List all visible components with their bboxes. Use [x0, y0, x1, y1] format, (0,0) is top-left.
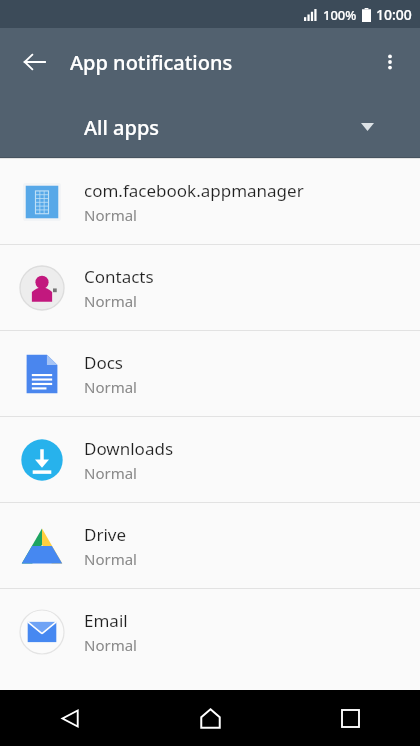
staticText: Normal — [84, 463, 137, 483]
button[interactable]: Email — [0, 588, 420, 674]
staticText: 10:00 — [376, 5, 412, 24]
button[interactable]: Contacts — [0, 244, 420, 330]
staticText: 100% — [323, 6, 357, 24]
button[interactable]: Back — [0, 690, 140, 746]
button[interactable]: Drive — [0, 502, 420, 588]
staticText: All apps — [84, 114, 160, 141]
staticText: Drive — [84, 523, 127, 546]
staticText: Normal — [84, 635, 137, 655]
button[interactable]: Docs — [0, 330, 420, 416]
button[interactable]: More options — [366, 38, 414, 86]
button[interactable]: Recent apps — [280, 690, 420, 746]
staticText: com.facebook.appmanager — [84, 179, 304, 202]
button[interactable]: Home — [140, 690, 280, 746]
staticText: Normal — [84, 205, 137, 225]
button[interactable]: com.facebook.appmanager — [0, 158, 420, 244]
button[interactable]: Downloads — [0, 416, 420, 502]
staticText: Contacts — [84, 265, 154, 288]
staticText: Docs — [84, 351, 123, 374]
staticText: Normal — [84, 549, 137, 569]
staticText: Downloads — [84, 437, 174, 460]
staticText: Normal — [84, 377, 137, 397]
button[interactable]: Navigate up — [10, 38, 58, 86]
staticText: App notifications — [70, 49, 233, 76]
staticText: Normal — [84, 291, 137, 311]
button[interactable]: All apps — [0, 96, 420, 158]
staticText: Email — [84, 609, 128, 632]
